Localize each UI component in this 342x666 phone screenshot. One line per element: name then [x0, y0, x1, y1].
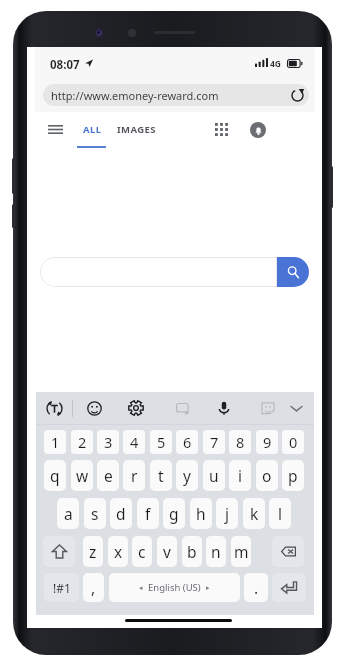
button[interactable]: ALL: [80, 117, 104, 141]
button[interactable]: 9: [256, 430, 278, 454]
button[interactable]: 6: [176, 430, 198, 454]
button[interactable]: Reload: [287, 85, 307, 105]
button[interactable]: Menu: [40, 117, 71, 141]
staticText: j: [225, 503, 229, 524]
button[interactable]: Enter: [272, 573, 306, 602]
staticText: ,: [91, 577, 96, 598]
button[interactable]: 5: [150, 430, 172, 454]
staticText: IMAGES: [117, 123, 156, 136]
button[interactable]: f: [137, 498, 159, 529]
staticText: 4G: [270, 58, 282, 70]
staticText: ◂: [139, 584, 143, 592]
button[interactable]: ◂: [109, 573, 240, 602]
staticText: b: [187, 541, 197, 562]
button[interactable]: i: [229, 460, 251, 491]
staticText: g: [169, 503, 179, 524]
button[interactable]: !#1: [44, 573, 79, 602]
button[interactable]: 1: [44, 430, 66, 454]
staticText: 08:07: [50, 57, 80, 73]
button[interactable]: Search: [277, 257, 309, 287]
button[interactable]: v: [157, 536, 177, 567]
staticText: n: [211, 541, 221, 562]
button[interactable]: c: [132, 536, 152, 567]
button[interactable]: m: [231, 536, 251, 567]
staticText: s: [91, 503, 99, 524]
staticText: 3: [104, 432, 113, 452]
button[interactable]: y: [176, 460, 198, 491]
button[interactable]: Stickers: [257, 397, 279, 419]
button[interactable]: 8: [229, 430, 251, 454]
button[interactable]: http://www.emoney-reward.com: [43, 84, 309, 106]
staticText: 2: [78, 432, 87, 452]
staticText: t: [158, 465, 164, 486]
staticText: 5: [157, 432, 166, 452]
button[interactable]: a: [57, 498, 79, 529]
staticText: m: [234, 541, 249, 562]
button[interactable]: g: [163, 498, 185, 529]
button[interactable]: Notifications: [246, 118, 270, 142]
button[interactable]: q: [44, 460, 66, 491]
button[interactable]: Google apps: [209, 117, 233, 141]
button[interactable]: 3: [97, 430, 119, 454]
staticText: x: [114, 541, 123, 562]
staticText: 8: [236, 432, 245, 452]
staticText: l: [278, 503, 282, 524]
button[interactable]: 7: [203, 430, 225, 454]
button[interactable]: n: [206, 536, 226, 567]
button[interactable]: Backspace: [272, 536, 304, 567]
button[interactable]: [40, 257, 277, 287]
staticText: e: [104, 465, 113, 486]
button[interactable]: Settings: [125, 397, 147, 419]
button[interactable]: Shift: [43, 536, 75, 567]
staticText: i: [238, 465, 242, 486]
staticText: http://www.emoney-reward.com: [51, 88, 219, 103]
staticText: English (US): [148, 581, 201, 594]
staticText: y: [183, 465, 191, 486]
staticText: ▸: [206, 584, 210, 592]
button[interactable]: b: [182, 536, 202, 567]
staticText: ALL: [83, 123, 102, 136]
button[interactable]: z: [83, 536, 103, 567]
staticText: h: [196, 503, 206, 524]
button[interactable]: 2: [71, 430, 93, 454]
button[interactable]: w: [71, 460, 93, 491]
button[interactable]: 4: [123, 430, 145, 454]
staticText: k: [250, 503, 259, 524]
button[interactable]: e: [97, 460, 119, 491]
button[interactable]: h: [190, 498, 212, 529]
button[interactable]: u: [203, 460, 225, 491]
staticText: 1: [51, 432, 60, 452]
button[interactable]: .: [244, 573, 268, 602]
button[interactable]: GIF: [172, 397, 194, 419]
button[interactable]: Voice input: [213, 397, 235, 419]
button[interactable]: r: [123, 460, 145, 491]
staticText: z: [89, 541, 97, 562]
staticText: !#1: [53, 580, 71, 596]
staticText: v: [163, 541, 171, 562]
staticText: 6: [183, 432, 192, 452]
staticText: f: [145, 503, 151, 524]
staticText: w: [76, 465, 89, 486]
button[interactable]: p: [282, 460, 304, 491]
button[interactable]: d: [110, 498, 132, 529]
button[interactable]: t: [150, 460, 172, 491]
staticText: o: [262, 465, 272, 486]
button[interactable]: ,: [83, 573, 104, 602]
staticText: u: [209, 465, 219, 486]
button[interactable]: j: [216, 498, 238, 529]
button[interactable]: k: [243, 498, 265, 529]
button[interactable]: 0: [282, 430, 304, 454]
button[interactable]: o: [256, 460, 278, 491]
button[interactable]: Translate: [43, 397, 65, 419]
button[interactable]: l: [269, 498, 291, 529]
button[interactable]: s: [84, 498, 106, 529]
staticText: 0: [289, 432, 298, 452]
staticText: r: [131, 465, 138, 486]
button[interactable]: Emoji: [83, 397, 105, 419]
button[interactable]: Collapse keyboard: [285, 397, 307, 419]
staticText: p: [288, 465, 298, 486]
staticText: 4: [130, 432, 139, 452]
button[interactable]: x: [108, 536, 128, 567]
button[interactable]: IMAGES: [115, 117, 157, 141]
staticText: 9: [263, 432, 272, 452]
